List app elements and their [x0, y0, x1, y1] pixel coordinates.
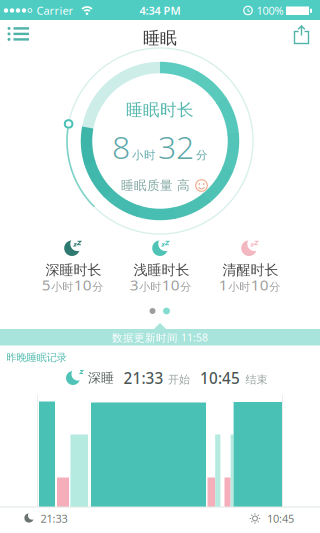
staticText: 4:34 PM — [139, 3, 180, 18]
staticText: 分 — [180, 280, 191, 294]
staticText: 小时 — [139, 280, 161, 294]
staticText: 睡眠时长 — [126, 99, 194, 120]
staticText: 小时 — [132, 148, 156, 162]
staticText: 数据更新时间 11:58 — [112, 330, 208, 345]
staticText: 开始 — [168, 373, 190, 386]
staticText: 100% — [256, 3, 283, 18]
staticText: 结束 — [245, 373, 267, 386]
staticText: 3 — [130, 274, 139, 295]
staticText: 32 — [158, 125, 194, 168]
staticText: 5 — [42, 274, 51, 295]
staticText: 分 — [269, 280, 280, 294]
staticText: 10 — [162, 274, 180, 295]
staticText: 10 — [251, 274, 269, 295]
staticText: 深睡时长 — [45, 261, 101, 279]
staticText: 昨晚睡眠记录 — [6, 351, 66, 364]
staticText: 小时 — [228, 280, 250, 294]
staticText: 分 — [196, 148, 208, 162]
staticText: 8 — [112, 125, 130, 168]
staticText: 分 — [92, 280, 103, 294]
staticText: 睡眠 — [143, 27, 177, 49]
staticText: 1 — [219, 274, 228, 295]
staticText: 21:33 — [123, 368, 163, 388]
staticText: 10:45 — [267, 511, 294, 526]
staticText: 小时 — [51, 280, 73, 294]
staticText: 深睡 — [88, 370, 114, 386]
staticText: 21:33 — [40, 511, 67, 526]
staticText: 浅睡时长 — [133, 261, 189, 279]
staticText: 10 — [74, 274, 92, 295]
staticText: 睡眠质量 高 — [121, 177, 190, 193]
staticText: 10:45 — [200, 368, 240, 388]
button[interactable]: Share — [0, 0, 320, 533]
staticText: Carrier — [36, 3, 73, 18]
staticText: 清醒时长 — [222, 261, 278, 279]
button[interactable]: Menu — [0, 0, 320, 533]
